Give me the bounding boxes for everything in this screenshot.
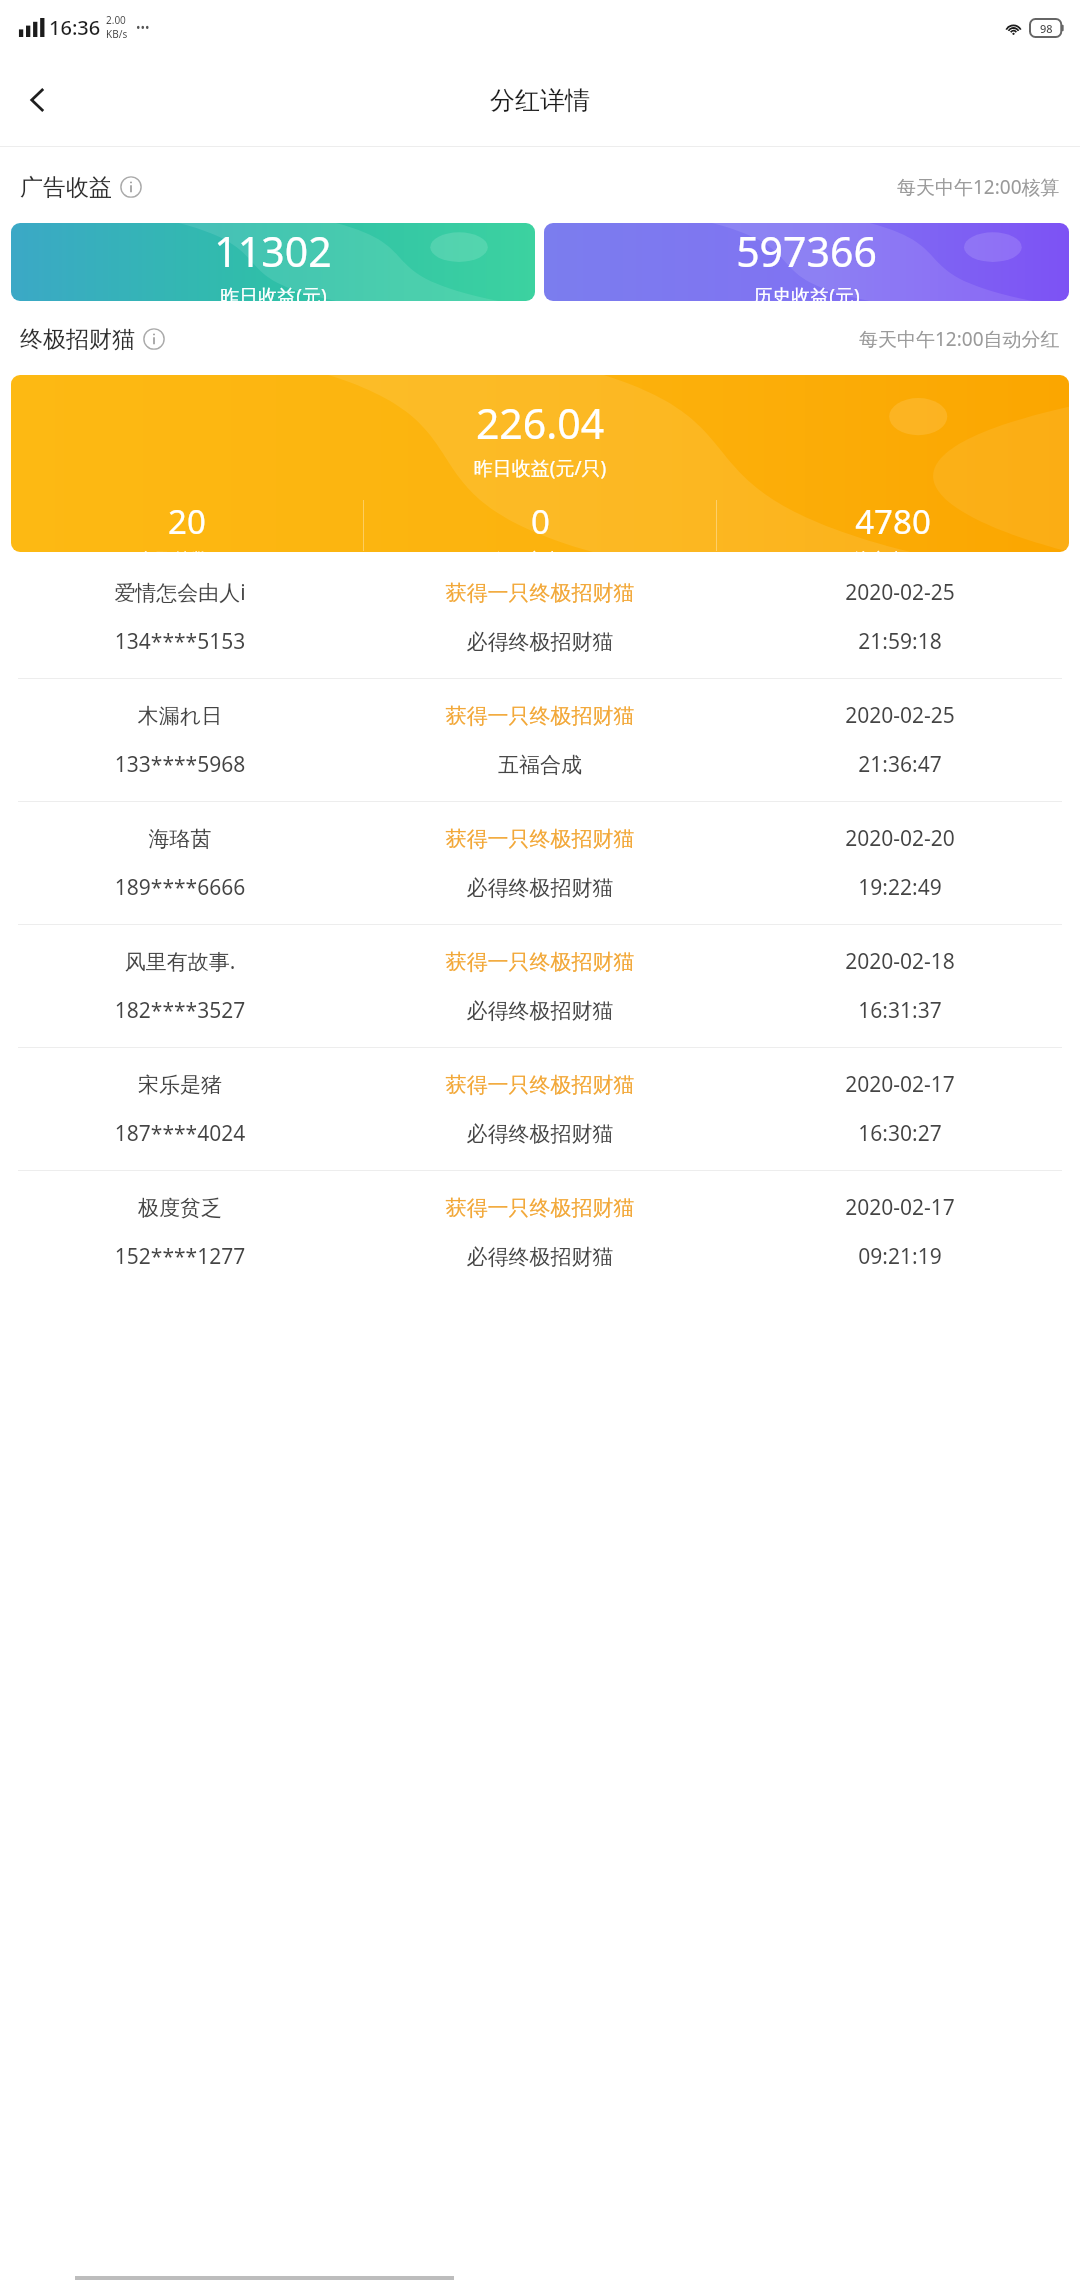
staticText: 获得一只终极招财猫 — [360, 580, 720, 606]
staticText: 必得终极招财猫 — [360, 1121, 720, 1147]
staticText: 木漏れ日 — [0, 703, 360, 729]
staticText: 2020-02-18 — [720, 947, 1080, 976]
staticText: 五福合成 — [360, 752, 720, 778]
staticText: 获得一只终极招财猫 — [360, 1072, 720, 1098]
staticText: 2020-02-25 — [720, 578, 1080, 607]
staticText: 19:22:49 — [720, 873, 1080, 902]
staticText: 98 — [1040, 21, 1053, 36]
staticText: 今日产出(只) — [490, 547, 591, 552]
button[interactable]: Info — [120, 176, 142, 198]
staticText: 16:31:37 — [720, 996, 1080, 1025]
staticText: 16:30:27 — [720, 1119, 1080, 1148]
staticText: 昨日收益(元/只) — [11, 455, 1069, 481]
button[interactable]: 极度贫乏 — [0, 1171, 1080, 1293]
staticText: 爱情怎会由人i — [0, 578, 360, 607]
staticText: 风里有故事. — [0, 947, 360, 976]
staticText: 226.04 — [11, 395, 1069, 451]
staticText: 09:21:19 — [720, 1242, 1080, 1271]
button[interactable]: 海珞茵 — [0, 802, 1080, 924]
staticText: 广告收益 — [20, 173, 112, 202]
staticText: 187****4024 — [0, 1119, 360, 1148]
button[interactable]: 木漏れ日 — [0, 679, 1080, 801]
staticText: 宋乐是猪 — [0, 1072, 360, 1098]
staticText: 16:36 — [49, 14, 101, 41]
staticText: 昨日收益(元) — [220, 283, 327, 301]
button[interactable]: Back — [6, 68, 70, 132]
button[interactable]: 宋乐是猪 — [0, 1048, 1080, 1170]
button[interactable]: 597366 — [544, 223, 1069, 301]
staticText: 4780 — [855, 499, 931, 544]
staticText: 极度贫乏 — [0, 1195, 360, 1221]
staticText: KB/s — [106, 27, 128, 41]
staticText: 终极招财猫 — [20, 325, 135, 354]
staticText: 必得终极招财猫 — [360, 875, 720, 901]
staticText: 21:59:18 — [720, 627, 1080, 656]
button[interactable]: 226.04 — [11, 375, 1069, 552]
staticText: 152****1277 — [0, 1242, 360, 1271]
staticText: 182****3527 — [0, 996, 360, 1025]
staticText: 获得一只终极招财猫 — [360, 826, 720, 852]
staticText: 133****5968 — [0, 750, 360, 779]
staticText: 每天中午12:00核算 — [897, 174, 1060, 200]
staticText: 11302 — [214, 223, 332, 279]
staticText: 2020-02-25 — [720, 701, 1080, 730]
staticText: 必得终极招财猫 — [360, 998, 720, 1024]
staticText: 2020-02-20 — [720, 824, 1080, 853]
staticText: 21:36:47 — [720, 750, 1080, 779]
staticText: 20 — [168, 499, 206, 544]
button[interactable]: 爱情怎会由人i — [0, 556, 1080, 678]
staticText: 待产出(只) — [852, 547, 935, 552]
staticText: 获得一只终极招财猫 — [360, 1195, 720, 1221]
staticText: 海珞茵 — [0, 826, 360, 852]
staticText: 每天中午12:00自动分红 — [859, 326, 1060, 352]
staticText: 2020-02-17 — [720, 1193, 1080, 1222]
button[interactable]: 风里有故事. — [0, 925, 1080, 1047]
staticText: 获得一只终极招财猫 — [360, 703, 720, 729]
staticText: ••• — [136, 19, 150, 35]
staticText: 134****5153 — [0, 627, 360, 656]
staticText: 全网总数(只) — [137, 547, 238, 552]
staticText: 必得终极招财猫 — [360, 1244, 720, 1270]
staticText: 597366 — [736, 223, 877, 279]
staticText: 2020-02-17 — [720, 1070, 1080, 1099]
button[interactable]: Info — [143, 328, 165, 350]
staticText: 分红详情 — [490, 85, 590, 116]
button[interactable]: 11302 — [11, 223, 535, 301]
staticText: 2.00 — [106, 13, 126, 27]
staticText: 获得一只终极招财猫 — [360, 949, 720, 975]
staticText: 历史收益(元) — [753, 283, 860, 301]
staticText: 必得终极招财猫 — [360, 629, 720, 655]
staticText: 0 — [531, 499, 550, 544]
staticText: 189****6666 — [0, 873, 360, 902]
